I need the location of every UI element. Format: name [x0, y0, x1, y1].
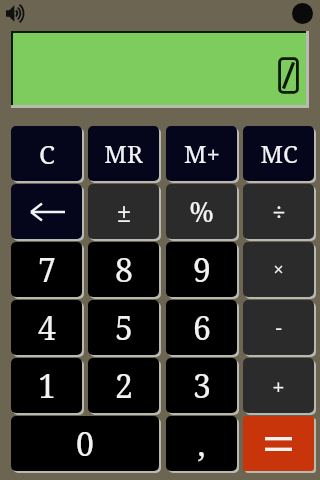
- button[interactable]: C: [11, 126, 82, 181]
- button[interactable]: 8: [88, 242, 159, 297]
- button[interactable]: 2: [88, 358, 159, 413]
- button[interactable]: ±: [88, 184, 159, 239]
- staticText: 6: [193, 306, 211, 350]
- staticText: -: [275, 314, 282, 341]
- button[interactable]: Backspace: [11, 184, 82, 239]
- staticText: ,: [197, 422, 206, 466]
- button[interactable]: 4: [11, 300, 82, 355]
- staticText: %: [189, 193, 214, 230]
- button[interactable]: ×: [243, 242, 314, 297]
- staticText: 5: [115, 306, 133, 350]
- button[interactable]: MR: [88, 126, 159, 181]
- staticText: 9: [193, 248, 211, 292]
- staticText: MC: [260, 137, 298, 170]
- staticText: +: [272, 371, 285, 401]
- button[interactable]: 7: [11, 242, 82, 297]
- staticText: MR: [104, 137, 143, 170]
- button[interactable]: ,: [166, 416, 237, 471]
- button[interactable]: ÷: [243, 184, 314, 239]
- staticText: 4: [38, 306, 56, 350]
- other: Volume: [5, 4, 29, 23]
- button[interactable]: 6: [166, 300, 237, 355]
- button[interactable]: %: [166, 184, 237, 239]
- staticText: 8: [115, 248, 133, 292]
- button[interactable]: 0: [11, 416, 159, 471]
- staticText: 0: [76, 422, 94, 466]
- staticText: 2: [115, 364, 133, 408]
- staticText: C: [39, 136, 55, 171]
- button[interactable]: 3: [166, 358, 237, 413]
- button[interactable]: M+: [166, 126, 237, 181]
- button[interactable]: -: [243, 300, 314, 355]
- button[interactable]: Equals: [243, 416, 314, 471]
- button[interactable]: MC: [243, 126, 314, 181]
- button[interactable]: 1: [11, 358, 82, 413]
- staticText: M+: [184, 137, 220, 170]
- staticText: 3: [193, 364, 211, 408]
- staticText: ÷: [272, 195, 286, 228]
- button[interactable]: +: [243, 358, 314, 413]
- staticText: ±: [116, 193, 132, 230]
- staticText: ×: [273, 257, 284, 282]
- staticText: 7: [38, 248, 56, 292]
- button[interactable]: 5: [88, 300, 159, 355]
- staticText: 1: [38, 364, 56, 408]
- button[interactable]: 9: [166, 242, 237, 297]
